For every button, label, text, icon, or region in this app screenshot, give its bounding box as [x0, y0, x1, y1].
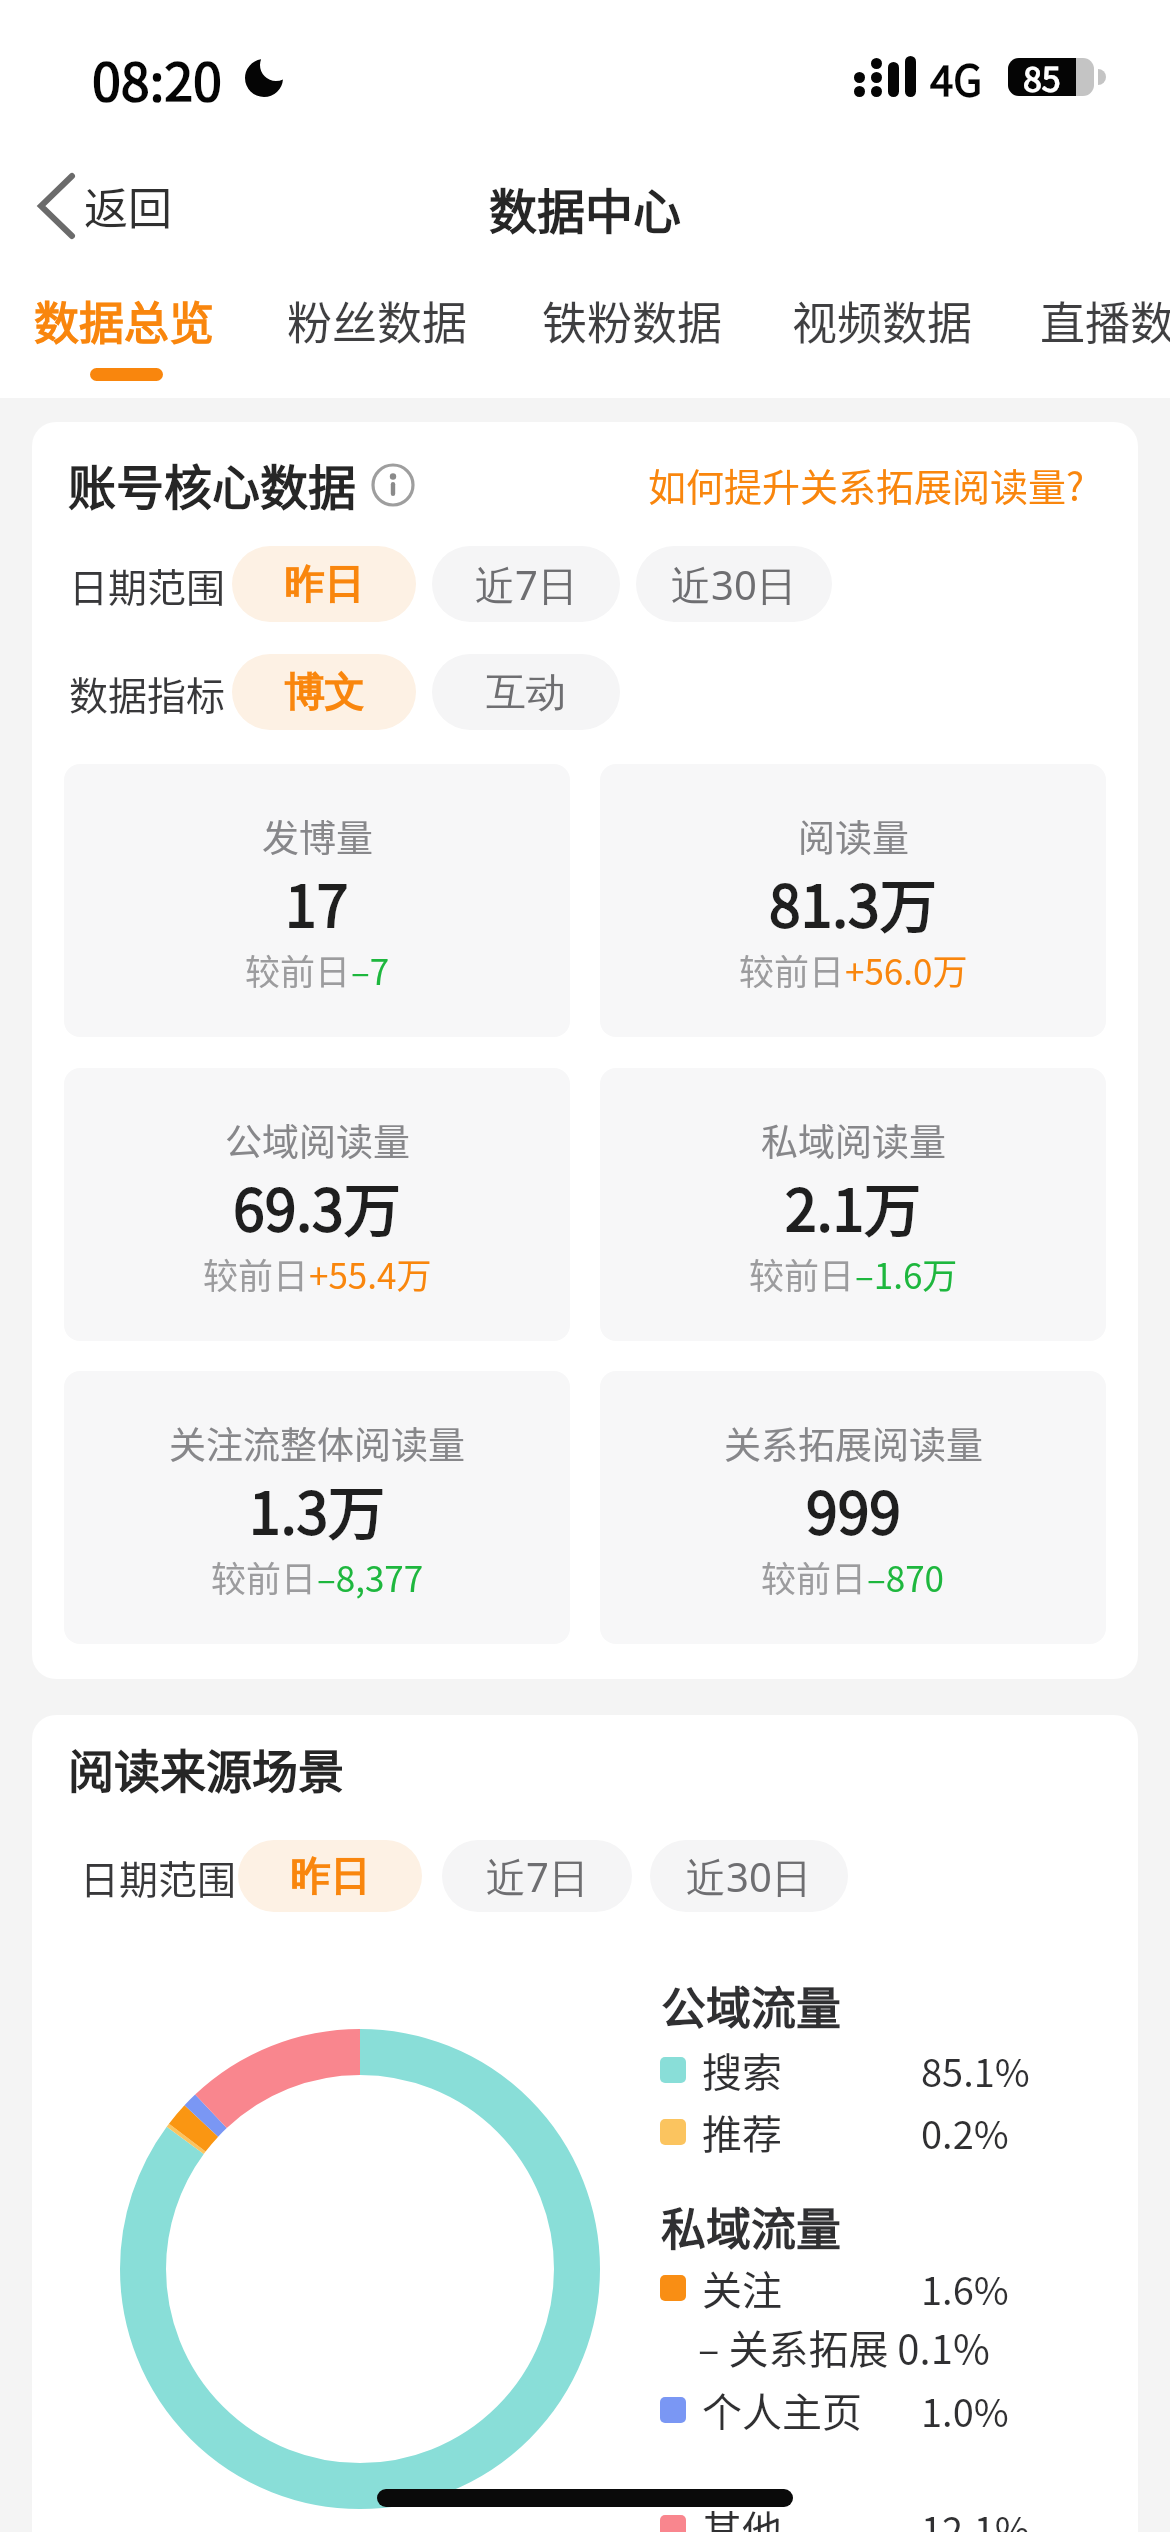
- staticText: 推荐: [702, 2103, 782, 2161]
- staticText: 69.3万: [233, 1165, 401, 1239]
- staticText: 较前日: [245, 944, 351, 995]
- staticText: 公域阅读量: [225, 1113, 410, 1167]
- staticText: –8,377: [317, 1551, 424, 1602]
- staticText: 1.3万: [249, 1468, 386, 1542]
- staticText: 日期范围: [69, 557, 226, 613]
- button[interactable]: 近30日: [650, 1840, 848, 1912]
- staticText: 公域流量: [661, 1973, 842, 2038]
- staticText: 日期范围: [80, 1849, 237, 1905]
- staticText: 铁粉数据: [542, 288, 723, 353]
- staticText: 12.1%: [921, 2501, 1030, 2532]
- staticText: 4G: [930, 47, 983, 108]
- staticText: 返回: [84, 174, 172, 238]
- staticText: 关注: [702, 2259, 782, 2317]
- button[interactable]: 铁粉数据: [522, 260, 742, 380]
- button[interactable]: 昨日: [238, 1840, 422, 1912]
- staticText: 近7日: [475, 557, 578, 612]
- button[interactable]: 近7日: [432, 546, 620, 622]
- button[interactable]: 近30日: [636, 546, 832, 622]
- staticText: 2.1万: [785, 1165, 922, 1239]
- button[interactable]: 数据总览: [14, 260, 234, 380]
- staticText: 如何提升关系拓展阅读量?: [648, 457, 1085, 512]
- staticText: 近7日: [486, 1849, 589, 1904]
- staticText: 发博量: [262, 809, 373, 863]
- button[interactable]: 关注流整体阅读量: [64, 1371, 570, 1644]
- button[interactable]: 私域阅读量: [600, 1068, 1106, 1341]
- staticText: 关系拓展阅读量: [724, 1416, 983, 1470]
- button[interactable]: 公域阅读量: [64, 1068, 570, 1341]
- staticText: 85: [1023, 53, 1061, 102]
- staticText: 1.6%: [921, 2261, 1009, 2316]
- staticText: 其他: [702, 2499, 782, 2532]
- staticText: 直播数据: [1040, 288, 1170, 353]
- staticText: 近30日: [686, 1849, 812, 1904]
- staticText: –870: [867, 1551, 945, 1602]
- staticText: 数据中心: [489, 173, 682, 243]
- staticText: 较前日: [211, 1551, 317, 1602]
- staticText: 999: [806, 1468, 901, 1542]
- button[interactable]: 互动: [432, 654, 620, 730]
- button[interactable]: 关系拓展阅读量: [600, 1371, 1106, 1644]
- staticText: – 关系拓展 0.1%: [698, 2318, 990, 2376]
- staticText: 0.2%: [921, 2105, 1009, 2160]
- staticText: 私域流量: [661, 2194, 842, 2259]
- staticText: 数据指标: [69, 665, 226, 721]
- staticText: 81.3万: [769, 861, 937, 935]
- staticText: –7: [351, 944, 390, 995]
- staticText: 关注流整体阅读量: [169, 1416, 465, 1470]
- button[interactable]: 视频数据: [772, 260, 992, 380]
- staticText: 85.1%: [921, 2043, 1030, 2098]
- button[interactable]: 近7日: [442, 1840, 632, 1912]
- staticText: 私域阅读量: [761, 1113, 946, 1167]
- button[interactable]: 返回: [28, 164, 198, 248]
- staticText: 近30日: [671, 557, 797, 612]
- button[interactable]: 昨日: [232, 546, 416, 622]
- staticText: 阅读量: [798, 809, 909, 863]
- staticText: 互动: [486, 667, 566, 717]
- staticText: +56.0万: [845, 944, 968, 995]
- staticText: 08:20: [92, 41, 222, 116]
- button[interactable]: 阅读量: [600, 764, 1106, 1037]
- staticText: 博文: [284, 667, 364, 717]
- staticText: +55.4万: [309, 1248, 432, 1299]
- staticText: 较前日: [203, 1248, 309, 1299]
- staticText: 昨日: [290, 1851, 370, 1901]
- staticText: 账号核心数据: [68, 449, 357, 519]
- staticText: 较前日: [761, 1551, 867, 1602]
- staticText: 17: [285, 861, 349, 935]
- staticText: 阅读来源场景: [68, 1735, 344, 1802]
- button[interactable]: 发博量: [64, 764, 570, 1037]
- staticText: 粉丝数据: [287, 288, 468, 353]
- staticText: –1.6万: [855, 1248, 958, 1299]
- staticText: 个人主页: [702, 2381, 862, 2439]
- staticText: 搜索: [702, 2041, 782, 2099]
- button[interactable]: 直播数据: [1040, 260, 1170, 380]
- button[interactable]: 博文: [232, 654, 416, 730]
- staticText: 较前日: [749, 1248, 855, 1299]
- staticText: 1.0%: [921, 2383, 1009, 2438]
- staticText: 昨日: [284, 559, 364, 609]
- button[interactable]: 粉丝数据: [267, 260, 487, 380]
- staticText: 较前日: [739, 944, 845, 995]
- button[interactable]: [371, 463, 415, 507]
- button[interactable]: 如何提升关系拓展阅读量?: [600, 439, 1085, 529]
- staticText: 数据总览: [34, 288, 215, 353]
- staticText: 视频数据: [792, 288, 973, 353]
